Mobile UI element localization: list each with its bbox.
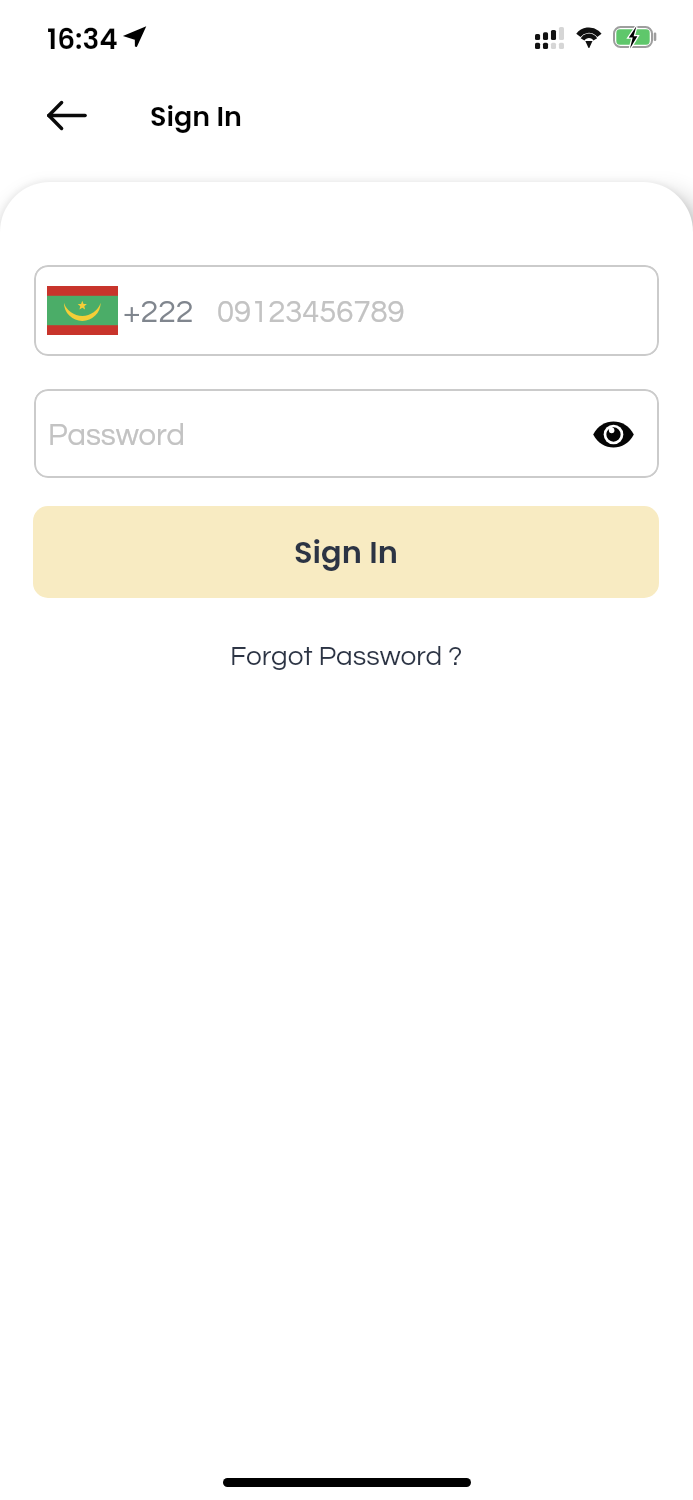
button[interactable]: Back <box>30 85 104 145</box>
button[interactable]: Sign In <box>33 506 659 598</box>
staticText: 09123456789 <box>217 297 405 329</box>
button[interactable]: Forgot Password ? <box>216 634 477 679</box>
staticText: +222 <box>123 296 194 329</box>
button[interactable]: Password <box>34 389 659 478</box>
staticText: Password <box>48 420 185 452</box>
staticText: Sign In <box>294 531 398 574</box>
staticText: 16:34 <box>47 20 118 59</box>
button[interactable]: +222 <box>34 265 659 356</box>
staticText: Sign In <box>150 98 242 136</box>
button[interactable]: Show password <box>586 407 640 461</box>
